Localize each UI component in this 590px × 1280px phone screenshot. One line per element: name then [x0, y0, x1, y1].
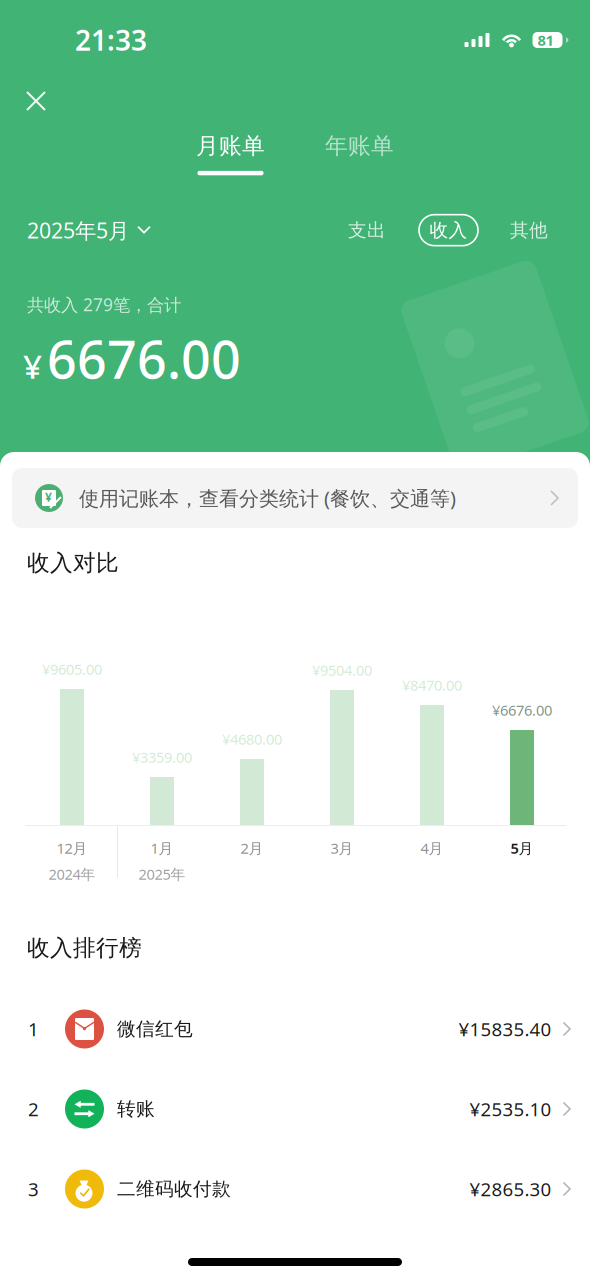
staticText: 1月 — [150, 838, 173, 858]
staticText: ¥8470.00 — [402, 675, 462, 695]
staticText: 月账单 — [196, 132, 265, 160]
button[interactable]: 年账单 — [325, 132, 394, 175]
staticText: 12月 — [56, 838, 87, 858]
staticText: ¥9605.00 — [42, 659, 102, 679]
staticText: 3 — [28, 1177, 39, 1201]
staticText: ¥2865.30 — [469, 1177, 551, 1201]
staticText: 1 — [28, 1017, 39, 1041]
staticText: ¥6676.00 — [492, 700, 552, 720]
staticText: 2024年 — [48, 864, 95, 884]
staticText: 5月 — [510, 838, 533, 858]
staticText: ¥ — [45, 489, 52, 505]
staticText: ¥ — [23, 344, 42, 388]
button[interactable]: 2 — [0, 1069, 590, 1149]
staticText: 转账 — [117, 1097, 155, 1120]
staticText: 2025年5月 — [27, 216, 129, 244]
staticText: 其他 — [510, 219, 548, 242]
button[interactable]: Close — [13, 78, 59, 124]
button[interactable]: ¥ — [0, 468, 590, 528]
staticText: 支出 — [348, 219, 386, 242]
staticText: 81 — [537, 30, 553, 50]
button[interactable]: 支出 — [337, 215, 397, 246]
staticText: ¥4680.00 — [222, 729, 282, 749]
staticText: 2月 — [240, 838, 263, 858]
staticText: 2025年 — [138, 864, 185, 884]
staticText: 2 — [28, 1097, 39, 1121]
button[interactable]: 3 — [0, 1149, 590, 1229]
staticText: 4月 — [420, 838, 443, 858]
staticText: 3月 — [330, 838, 353, 858]
staticText: 收入对比 — [27, 549, 119, 577]
staticText: ¥3359.00 — [132, 747, 192, 767]
staticText: 年账单 — [325, 132, 394, 160]
staticText: ¥9504.00 — [312, 660, 372, 680]
staticText: 收入 — [429, 219, 467, 242]
staticText: 共收入 279笔，合计 — [27, 293, 181, 316]
staticText: ¥15835.40 — [458, 1017, 551, 1041]
button[interactable]: 1 — [0, 989, 590, 1069]
staticText: ¥2535.10 — [469, 1097, 551, 1121]
button[interactable]: 2025年5月 — [27, 208, 151, 252]
staticText: 微信红包 — [117, 1017, 193, 1040]
staticText: 使用记账本，查看分类统计 (餐饮、交通等) — [79, 485, 456, 511]
button[interactable]: 月账单 — [196, 132, 265, 175]
button[interactable]: 其他 — [499, 215, 559, 246]
staticText: 21:33 — [75, 21, 147, 59]
button[interactable]: 收入 — [419, 215, 478, 246]
staticText: 6676.00 — [47, 324, 241, 393]
staticText: 二维码收付款 — [117, 1177, 231, 1200]
staticText: 收入排行榜 — [27, 934, 142, 962]
